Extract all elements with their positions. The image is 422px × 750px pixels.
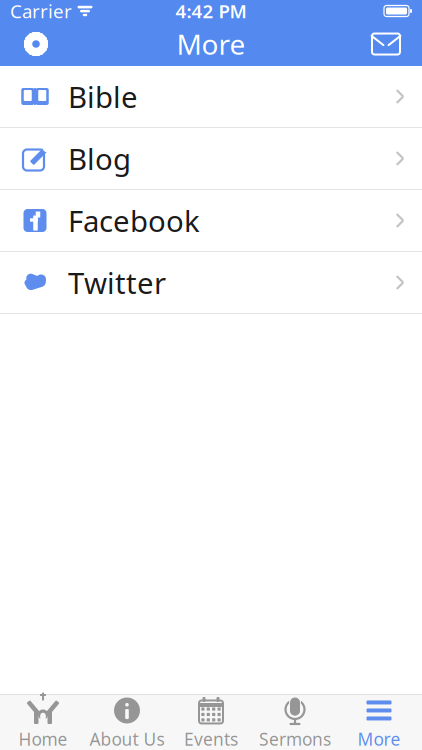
button[interactable]: Blog [0, 128, 422, 190]
staticText: Facebook [68, 201, 200, 240]
button[interactable]: Twitter [0, 252, 422, 314]
button[interactable]: Settings [8, 22, 64, 66]
staticText: Carrier [10, 0, 72, 23]
button[interactable]: More [337, 695, 421, 749]
button[interactable]: Events [169, 695, 253, 749]
staticText: Blog [68, 139, 131, 178]
staticText: Twitter [68, 263, 166, 302]
staticText: More [176, 25, 245, 63]
button[interactable]: Bible [0, 66, 422, 128]
staticText: Sermons [259, 727, 331, 750]
staticText: Home [18, 727, 67, 750]
staticText: Events [184, 727, 238, 750]
button[interactable]: Facebook [0, 190, 422, 252]
staticText: Bible [68, 77, 138, 116]
staticText: About Us [89, 727, 164, 750]
button[interactable]: Home [1, 695, 85, 749]
button[interactable]: Sermons [253, 695, 337, 749]
button[interactable]: About Us [85, 695, 169, 749]
staticText: More [357, 727, 400, 750]
staticText: 4:42 PM [175, 0, 246, 23]
button[interactable]: Mail [358, 22, 414, 66]
